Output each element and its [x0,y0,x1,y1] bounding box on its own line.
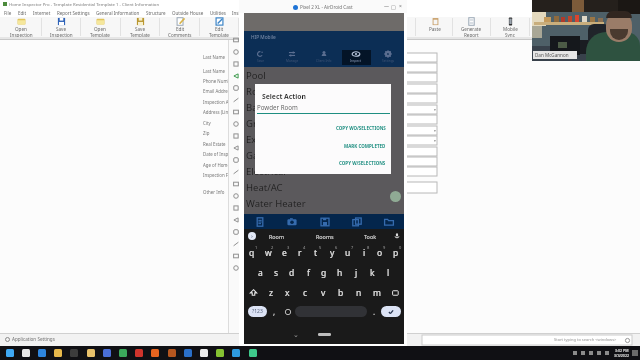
button[interactable]: Attach [318,215,332,229]
button[interactable]: Settings [372,47,404,66]
button[interactable]: Window [397,3,404,10]
button[interactable]: Enter [381,306,401,317]
button[interactable]: Roof [244,83,404,99]
button[interactable]: Report Settings [54,8,93,17]
button[interactable] [406,94,437,103]
button[interactable]: Edit [161,17,199,37]
button[interactable]: File [1,8,15,17]
button[interactable]: z [262,283,279,302]
button[interactable]: Tool [229,226,243,238]
button[interactable]: u [340,243,356,263]
button[interactable]: Tool [229,214,243,226]
button[interactable]: h [332,263,348,283]
button[interactable]: Rooms [314,229,335,243]
button[interactable]: ?123 [248,306,267,317]
button[interactable]: Backspace [386,283,404,302]
button[interactable]: Save [121,17,159,37]
button[interactable]: Tool [229,106,243,118]
button[interactable]: Garage [244,147,404,163]
button[interactable]: Edit [15,8,30,17]
button[interactable]: Taskbar app [228,346,244,360]
button[interactable] [406,115,437,124]
button[interactable]: Tool [229,202,243,214]
button[interactable]: g [316,263,332,283]
button[interactable]: Took [360,229,381,243]
button[interactable]: Back [292,331,299,338]
button[interactable]: Tool [229,46,243,58]
button[interactable]: ▾ [406,136,437,145]
button[interactable]: Attach [253,215,267,229]
button[interactable]: Tool [229,70,243,82]
button[interactable]: Voice input [393,232,401,240]
button[interactable]: Space [295,306,367,317]
button[interactable]: Room [266,229,287,243]
button[interactable]: Window [390,3,397,10]
button[interactable]: Water Heater [244,195,404,211]
button[interactable]: Tool [229,238,243,250]
button[interactable]: Tool [229,190,243,202]
button[interactable]: Open [2,17,40,37]
button[interactable]: Inside House [229,8,263,17]
button[interactable]: v [314,283,332,302]
button[interactable]: q [244,243,260,263]
button[interactable]: y [324,243,340,263]
button[interactable] [406,84,437,93]
button[interactable]: Tool [229,154,243,166]
button[interactable]: Tool [229,118,243,130]
button[interactable]: Taskbar app [180,346,196,360]
button[interactable]: i [356,243,372,263]
button[interactable]: Attach [382,215,396,229]
button[interactable]: Taskbar app [18,346,34,360]
button[interactable]: Taskbar app [66,346,82,360]
button[interactable]: Attach [350,215,364,229]
button[interactable]: Taskbar app [115,346,131,360]
button[interactable]: Shift [244,283,262,302]
button[interactable]: t [308,243,324,263]
button[interactable]: p [388,243,404,263]
button[interactable]: Add [390,191,401,202]
button[interactable]: Taskbar app [147,346,163,360]
button[interactable]: Tool [229,82,243,94]
button[interactable]: s [268,263,284,283]
button[interactable] [406,53,437,62]
button[interactable]: Paste [416,17,454,37]
button[interactable]: Taskbar app [2,346,18,360]
button[interactable]: Taskbar app [99,346,115,360]
button[interactable]: Pool [244,67,404,83]
button[interactable]: Tool [229,58,243,70]
button[interactable]: c [296,283,314,302]
button[interactable]: f [300,263,316,283]
button[interactable]: Save [42,17,80,37]
button[interactable]: j [348,263,364,283]
button[interactable]: Inspect [340,47,372,66]
button[interactable]: Taskbar app [245,346,261,360]
button[interactable]: Taskbar app [164,346,180,360]
button[interactable] [406,73,437,82]
button[interactable]: d [284,263,300,283]
button[interactable]: Emoji [281,302,295,321]
button[interactable]: w [260,243,276,263]
button[interactable]: Edit [200,17,238,37]
button[interactable]: General Information [93,8,143,17]
button[interactable]: Taskbar app [50,346,66,360]
button[interactable] [406,63,437,72]
button[interactable]: k [364,263,380,283]
button[interactable]: Window [383,3,390,10]
button[interactable]: Taskbar app [212,346,228,360]
button[interactable]: Mobile [491,17,529,37]
button[interactable]: More [248,232,256,240]
button[interactable]: ▾ [406,105,437,114]
button[interactable]: Internet [30,8,54,17]
button[interactable]: . [367,302,381,321]
button[interactable]: Generate [452,17,490,37]
button[interactable]: x [279,283,296,302]
button[interactable]: a [252,263,268,283]
button[interactable]: o [372,243,388,263]
button[interactable]: Tool [229,142,243,154]
button[interactable]: , [267,302,281,321]
button[interactable]: Utilities [207,8,229,17]
button[interactable]: Outside House [169,8,207,17]
button[interactable]: Exterior [244,131,404,147]
button[interactable]: r [292,243,308,263]
